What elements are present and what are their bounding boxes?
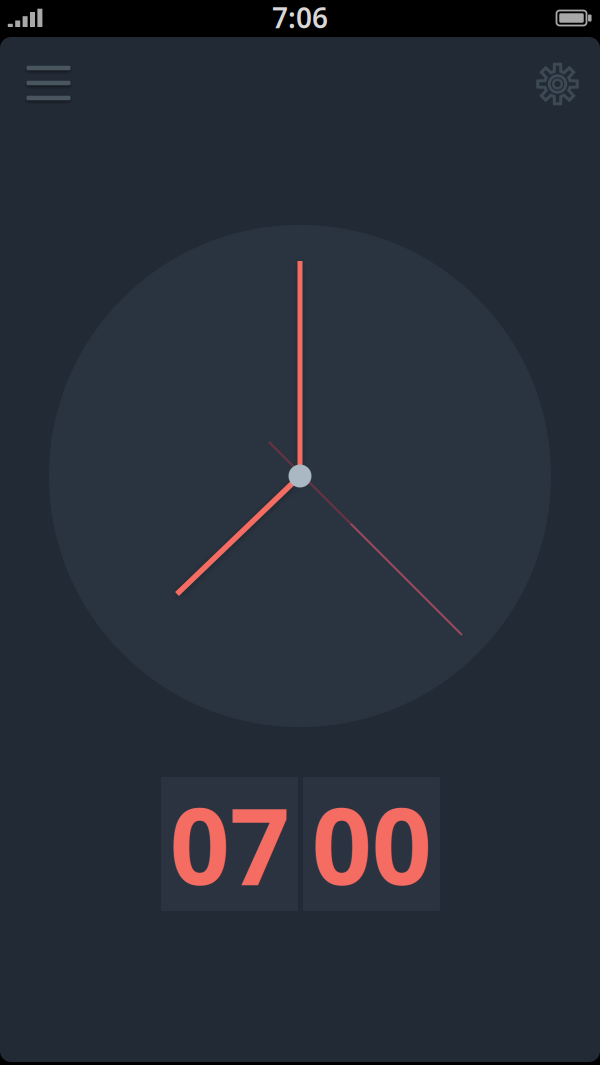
- staticText: 07: [169, 774, 289, 914]
- button[interactable]: Settings: [535, 62, 579, 106]
- staticText: 00: [311, 774, 431, 914]
- staticText: 7:06: [272, 0, 328, 36]
- button[interactable]: Menu: [18, 55, 78, 111]
